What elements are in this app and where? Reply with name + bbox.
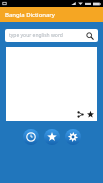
button[interactable]: Share xyxy=(6,47,97,121)
button[interactable]: Settings xyxy=(65,129,81,145)
button[interactable]: Search xyxy=(85,31,95,41)
button[interactable]: type your english word xyxy=(5,29,98,42)
button[interactable]: Bangla Dictionary xyxy=(0,7,103,22)
button[interactable]: History xyxy=(23,129,39,145)
button[interactable]: Add to favourites xyxy=(86,110,94,118)
staticText: type your english word xyxy=(9,32,63,39)
staticText: Bangla Dictionary xyxy=(5,11,55,19)
button[interactable]: Share xyxy=(76,110,84,118)
button[interactable]: Favourites xyxy=(44,129,60,145)
